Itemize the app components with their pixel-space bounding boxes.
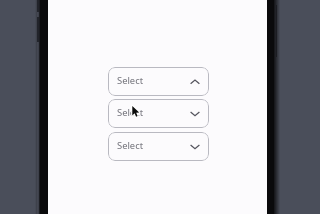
staticText: Select — [117, 139, 144, 152]
staticText: Select — [117, 106, 144, 119]
button[interactable]: Select dropdown — [108, 132, 209, 161]
button[interactable]: Select dropdown — [108, 67, 209, 96]
staticText: Select — [117, 74, 144, 87]
button[interactable]: Select dropdown — [108, 99, 209, 128]
